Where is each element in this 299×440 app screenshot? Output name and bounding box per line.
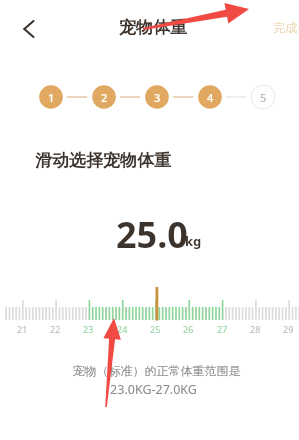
staticText: 23 — [83, 323, 94, 335]
staticText: 宠物体重 — [119, 17, 187, 38]
button[interactable]: 21 — [0, 284, 299, 340]
staticText: 5 — [260, 90, 267, 105]
staticText: 24 — [117, 323, 128, 335]
staticText: 22 — [50, 323, 61, 335]
staticText: kg — [185, 232, 202, 250]
staticText: 1 — [48, 90, 55, 105]
button[interactable]: 完成 — [267, 12, 299, 43]
staticText: 29 — [283, 323, 294, 335]
staticText: 滑动选择宠物体重 — [35, 150, 171, 171]
button[interactable]: 4 — [198, 85, 222, 109]
staticText: 宠物（标准）的正常体重范围是 — [7, 363, 299, 378]
staticText: 3 — [154, 90, 161, 105]
button[interactable]: Back — [9, 10, 45, 46]
staticText: 28 — [250, 323, 261, 335]
staticText: 4 — [207, 90, 214, 105]
staticText: 23.0KG-27.0KG — [4, 381, 299, 398]
button[interactable]: 1 — [39, 85, 63, 109]
staticText: 2 — [101, 90, 108, 105]
button[interactable]: 2 — [92, 85, 116, 109]
staticText: 21 — [17, 323, 28, 335]
staticText: 25.0 — [116, 210, 188, 259]
staticText: 27 — [217, 323, 228, 335]
staticText: 完成 — [273, 20, 297, 35]
button[interactable]: 3 — [145, 85, 169, 109]
button[interactable]: 5 — [251, 85, 275, 109]
staticText: 26 — [183, 323, 194, 335]
staticText: 25 — [150, 323, 161, 335]
